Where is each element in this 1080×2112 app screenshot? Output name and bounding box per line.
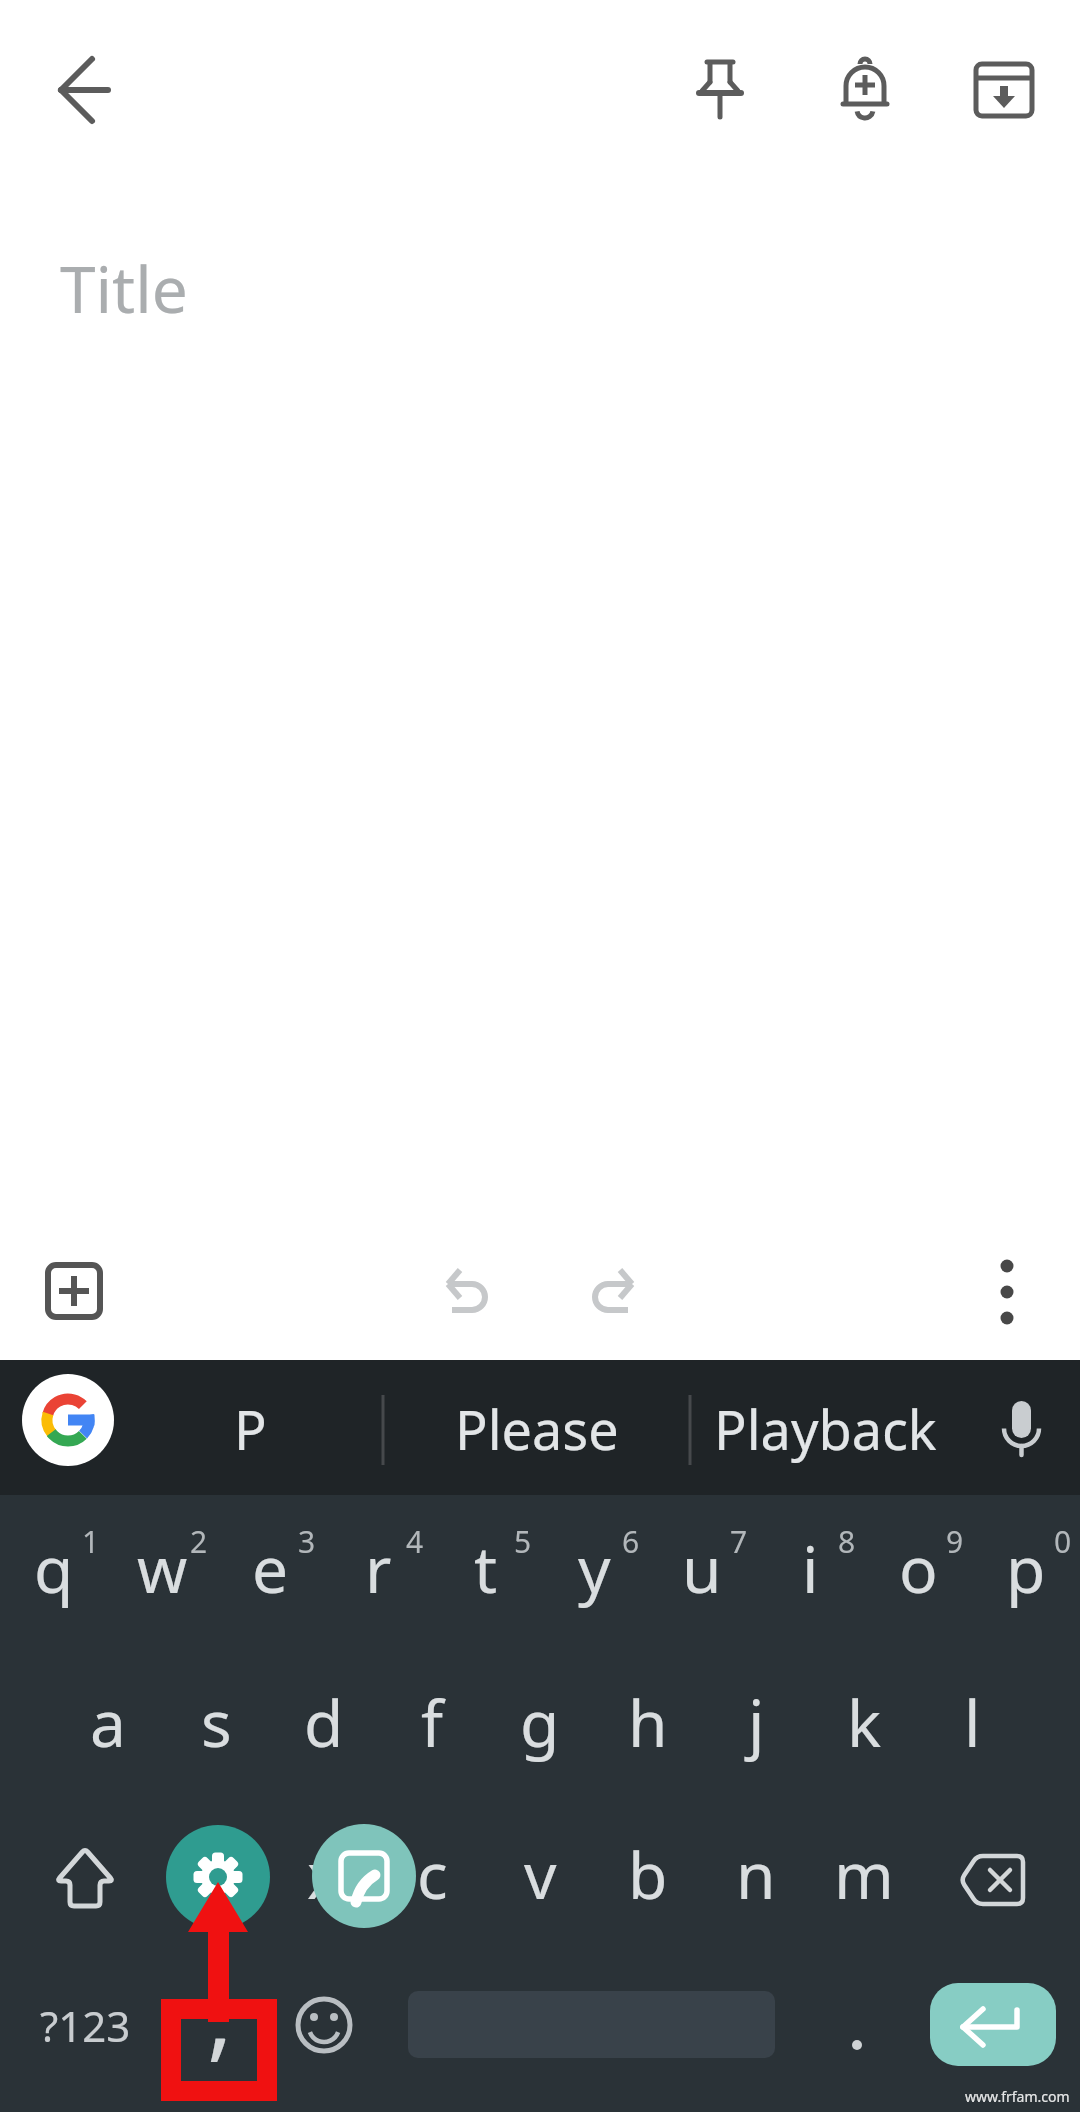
- staticText: f: [421, 1679, 444, 1766]
- button[interactable]: [672, 43, 768, 139]
- staticText: b: [628, 1831, 668, 1918]
- staticText: q: [34, 1525, 74, 1612]
- button[interactable]: j: [703, 1647, 809, 1797]
- staticText: 4: [406, 1521, 424, 1562]
- staticText: 3: [298, 1521, 316, 1562]
- button[interactable]: [973, 1380, 1069, 1476]
- staticText: u: [682, 1525, 722, 1612]
- button[interactable]: [558, 1247, 654, 1343]
- button[interactable]: ?123: [10, 1955, 160, 2095]
- button[interactable]: o: [865, 1493, 971, 1643]
- button[interactable]: [817, 44, 913, 140]
- staticText: ,: [207, 1948, 233, 2077]
- button[interactable]: l: [919, 1647, 1025, 1797]
- staticText: p: [1006, 1525, 1046, 1612]
- staticText: 2: [190, 1521, 208, 1562]
- staticText: 9: [946, 1521, 964, 1562]
- button[interactable]: r: [325, 1493, 431, 1643]
- staticText: 1: [82, 1521, 100, 1562]
- button[interactable]: t: [433, 1493, 539, 1643]
- staticText: h: [628, 1679, 668, 1766]
- staticText: P: [234, 1392, 267, 1466]
- button[interactable]: [930, 1983, 1056, 2066]
- button[interactable]: g: [487, 1647, 593, 1797]
- staticText: y: [578, 1525, 611, 1612]
- button[interactable]: [312, 1824, 416, 1928]
- staticText: l: [964, 1679, 981, 1766]
- staticText: x: [307, 1831, 341, 1918]
- button[interactable]: [26, 1243, 122, 1339]
- button[interactable]: y: [541, 1493, 647, 1643]
- staticText: o: [899, 1525, 938, 1612]
- staticText: m: [834, 1831, 894, 1918]
- staticText: w: [137, 1525, 188, 1612]
- button[interactable]: p: [973, 1493, 1079, 1643]
- staticText: Playback: [714, 1392, 937, 1466]
- button[interactable]: Please: [407, 1361, 667, 1496]
- staticText: d: [304, 1679, 344, 1766]
- button[interactable]: [959, 1244, 1055, 1340]
- staticText: g: [520, 1679, 560, 1766]
- button[interactable]: [426, 1247, 522, 1343]
- staticText: i: [802, 1525, 819, 1612]
- staticText: n: [736, 1831, 776, 1918]
- staticText: t: [474, 1525, 498, 1612]
- button[interactable]: [22, 1374, 114, 1466]
- staticText: s: [201, 1679, 232, 1766]
- button[interactable]: q: [1, 1493, 107, 1643]
- button[interactable]: h: [595, 1647, 701, 1797]
- button[interactable]: k: [811, 1647, 917, 1797]
- staticText: k: [847, 1679, 882, 1766]
- button[interactable]: P: [165, 1361, 335, 1496]
- button[interactable]: [945, 1832, 1041, 1928]
- button[interactable]: e: [217, 1493, 323, 1643]
- button[interactable]: c: [379, 1799, 485, 1949]
- button[interactable]: [37, 1830, 133, 1926]
- button[interactable]: [166, 1825, 270, 1929]
- staticText: v: [524, 1831, 557, 1918]
- staticText: e: [252, 1525, 289, 1612]
- staticText: a: [90, 1679, 126, 1766]
- button[interactable]: x: [271, 1799, 377, 1949]
- staticText: 0: [1054, 1521, 1072, 1562]
- button[interactable]: i: [757, 1493, 863, 1643]
- button[interactable]: Playback: [705, 1361, 945, 1496]
- button[interactable]: w: [109, 1493, 215, 1643]
- staticText: ?123: [40, 1997, 131, 2054]
- button[interactable]: m: [811, 1799, 917, 1949]
- button[interactable]: b: [595, 1799, 701, 1949]
- button[interactable]: f: [379, 1647, 485, 1797]
- button[interactable]: [809, 1977, 905, 2073]
- button[interactable]: [37, 42, 133, 138]
- staticText: c: [417, 1831, 448, 1918]
- button[interactable]: a: [55, 1647, 161, 1797]
- button[interactable]: d: [271, 1647, 377, 1797]
- staticText: Please: [455, 1392, 619, 1466]
- staticText: j: [748, 1679, 765, 1766]
- button[interactable]: u: [649, 1493, 755, 1643]
- button[interactable]: [956, 42, 1052, 138]
- button[interactable]: [276, 1977, 372, 2073]
- button[interactable]: n: [703, 1799, 809, 1949]
- staticText: www.frfam.com: [965, 2087, 1070, 2106]
- staticText: 8: [838, 1521, 856, 1562]
- button[interactable]: v: [487, 1799, 593, 1949]
- button[interactable]: s: [163, 1647, 269, 1797]
- button[interactable]: ,: [167, 1942, 273, 2082]
- staticText: 7: [730, 1521, 748, 1562]
- staticText: r: [365, 1525, 392, 1612]
- staticText: 5: [514, 1521, 532, 1562]
- staticText: Title: [60, 245, 188, 332]
- staticText: 6: [622, 1521, 640, 1562]
